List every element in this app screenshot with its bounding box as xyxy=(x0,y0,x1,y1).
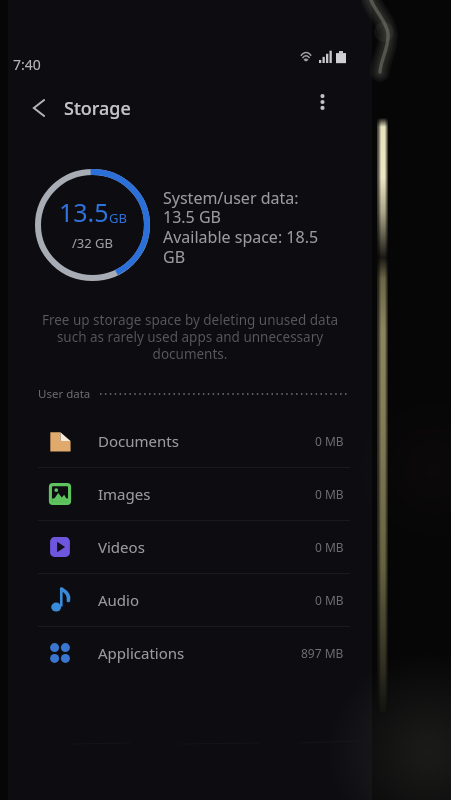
staticText: Images xyxy=(98,484,151,504)
staticText: Videos xyxy=(98,537,145,557)
staticText: 0 MB xyxy=(315,539,344,555)
staticText: Storage xyxy=(64,96,131,121)
staticText: User data xyxy=(38,386,91,402)
staticText: 0 MB xyxy=(315,592,344,608)
staticText: Documents xyxy=(98,431,179,451)
staticText: Applications xyxy=(98,643,185,663)
staticText: Free up storage space by deleting unused… xyxy=(30,311,350,363)
staticText: 0 MB xyxy=(315,433,344,449)
button[interactable]: Audio xyxy=(8,574,372,626)
staticText: 897 MB xyxy=(301,645,344,661)
button[interactable]: Applications xyxy=(8,627,372,679)
button[interactable]: Documents xyxy=(8,415,372,467)
button[interactable]: Back xyxy=(17,86,61,130)
staticText: Audio xyxy=(98,590,140,610)
button[interactable]: Videos xyxy=(8,521,372,573)
staticText: 0 MB xyxy=(315,486,344,502)
staticText: /32 GB xyxy=(72,234,114,252)
staticText: 13.5 xyxy=(59,195,109,229)
staticText: System/user data: 13.5 GB Available spac… xyxy=(163,187,335,268)
staticText: 7:40 xyxy=(13,55,41,74)
button[interactable]: More options xyxy=(300,80,344,124)
staticText: GB xyxy=(109,209,127,227)
button[interactable]: Images xyxy=(8,468,372,520)
